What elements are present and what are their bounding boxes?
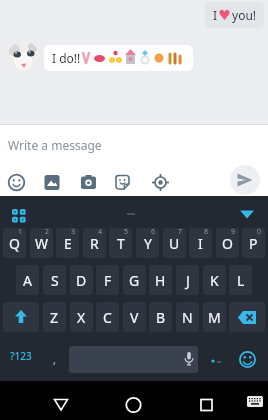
button[interactable]: N (176, 302, 199, 332)
button[interactable]: S (43, 265, 66, 295)
staticText: I do!! (52, 50, 81, 66)
button[interactable] (45, 385, 77, 417)
staticText: P (249, 234, 258, 253)
button[interactable]: U (163, 228, 186, 258)
button[interactable]: ?123 (3, 341, 39, 371)
button[interactable]: G (123, 265, 146, 295)
button[interactable] (3, 302, 39, 332)
staticText: N (182, 308, 193, 327)
staticText: D (76, 271, 87, 290)
staticText: I ♥ you! (213, 7, 257, 24)
button[interactable]: D (70, 265, 93, 295)
button[interactable] (69, 346, 198, 373)
staticText: 4 (98, 228, 103, 237)
staticText: Z (50, 308, 59, 327)
staticText: 1 (18, 228, 23, 237)
button[interactable]: , (43, 341, 65, 371)
button[interactable]: L (229, 265, 252, 295)
button[interactable]: I ♥ you! (205, 2, 264, 28)
button[interactable]: H (149, 265, 172, 295)
staticText: E (64, 234, 72, 253)
staticText: T (117, 234, 125, 253)
button[interactable] (233, 204, 261, 222)
staticText: U (169, 234, 180, 253)
staticText: K (210, 271, 219, 290)
button[interactable]: W (30, 228, 53, 258)
staticText: 9 (231, 228, 236, 237)
staticText: ?123 (10, 349, 32, 363)
button[interactable]: C (96, 302, 119, 332)
button[interactable] (117, 385, 149, 417)
button[interactable]: R (83, 228, 106, 258)
staticText: I (198, 234, 203, 253)
staticText: 5 (124, 228, 129, 237)
staticText: 2 (45, 228, 50, 237)
staticText: Y (144, 234, 152, 253)
staticText: , (53, 352, 56, 367)
button[interactable]: I do!! (44, 45, 193, 71)
button[interactable]: A (16, 265, 39, 295)
staticText: 0 (257, 228, 262, 237)
button[interactable]: K (203, 265, 226, 295)
staticText: 8 (204, 228, 209, 237)
staticText: S (51, 271, 59, 290)
button[interactable] (243, 389, 267, 413)
button[interactable]: X (70, 302, 93, 332)
button[interactable]: Z (43, 302, 66, 332)
button[interactable]: J (176, 265, 199, 295)
staticText: C (103, 308, 112, 327)
staticText: 6 (151, 228, 156, 237)
staticText: R (90, 234, 99, 253)
staticText: G (129, 271, 140, 290)
button[interactable]: Q (3, 228, 26, 258)
button[interactable]: P (242, 228, 265, 258)
staticText: 7 (178, 228, 183, 237)
staticText: B (156, 308, 166, 327)
staticText: O (222, 234, 233, 253)
staticText: X (77, 308, 86, 327)
button[interactable]: B (149, 302, 172, 332)
button[interactable]: V (123, 302, 146, 332)
button[interactable]: Y (136, 228, 159, 258)
button[interactable]: M (203, 302, 226, 332)
button[interactable]: Write a message (0, 133, 268, 155)
button[interactable] (234, 346, 261, 373)
button[interactable]: T (109, 228, 132, 258)
staticText: F (104, 271, 112, 290)
staticText: J (186, 271, 190, 290)
button[interactable] (190, 385, 222, 417)
button[interactable]: I (189, 228, 212, 258)
button[interactable] (6, 203, 38, 229)
button[interactable]: O (216, 228, 239, 258)
button[interactable] (230, 165, 260, 195)
staticText: A (23, 271, 32, 290)
staticText: V (130, 308, 139, 327)
staticText: W (35, 234, 49, 253)
staticText: Q (9, 234, 20, 253)
button[interactable] (203, 341, 225, 371)
button[interactable] (229, 302, 265, 332)
staticText: Write a message (8, 137, 102, 153)
staticText: H (155, 271, 166, 290)
button[interactable]: E (56, 228, 79, 258)
staticText: M (208, 308, 221, 327)
staticText: L (237, 271, 245, 290)
button[interactable]: F (96, 265, 119, 295)
staticText: 3 (71, 228, 76, 237)
